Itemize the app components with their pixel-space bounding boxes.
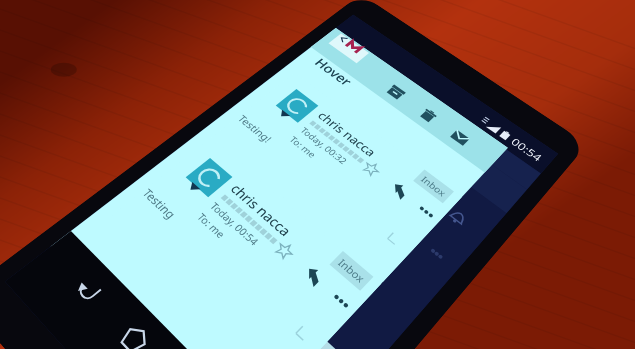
staticText: chris nacca <box>314 109 380 160</box>
button[interactable]: Back <box>58 263 118 318</box>
staticText: farewell to Tito Vi <box>143 330 224 349</box>
button[interactable]: Inbox <box>335 256 368 286</box>
button[interactable]: Football - Liga <box>20 176 355 349</box>
staticText: Emotional farewell <box>192 264 346 349</box>
button[interactable]: Star <box>267 236 301 266</box>
staticText: All Sports <box>364 91 418 132</box>
button[interactable]: Star <box>356 156 386 182</box>
button[interactable]: Reply <box>384 177 415 204</box>
button[interactable]: Gmail <box>328 34 369 63</box>
button[interactable]: More options <box>324 284 358 317</box>
staticText: Testing <box>139 186 180 222</box>
button[interactable]: Reply <box>296 260 330 292</box>
staticText: Vilanova <box>172 298 244 349</box>
staticText: Today, 00:32 <box>298 125 350 167</box>
button[interactable]: More options <box>410 198 442 226</box>
staticText: Hover <box>310 55 356 90</box>
staticText: Barcelona bade an <box>156 319 242 349</box>
button[interactable]: chris nacca <box>212 73 462 282</box>
staticText: 00:54 <box>508 135 545 164</box>
staticText: Testing! <box>235 112 275 145</box>
staticText: Football - Liga <box>136 181 189 229</box>
staticText: Today, 00:54 <box>207 200 262 248</box>
staticText: To: me <box>194 210 229 241</box>
button[interactable]: chris nacca <box>112 139 381 349</box>
button[interactable]: Delete <box>414 103 443 127</box>
button[interactable]: Mark unread <box>445 125 474 149</box>
staticText: Inbox <box>418 174 449 199</box>
button[interactable]: Inbox <box>418 174 449 199</box>
staticText: chris nacca <box>226 180 296 240</box>
button[interactable]: Home <box>104 310 166 349</box>
button[interactable]: Archive <box>382 81 410 103</box>
staticText: Inbox <box>335 256 368 286</box>
staticText: To: me <box>287 134 319 160</box>
